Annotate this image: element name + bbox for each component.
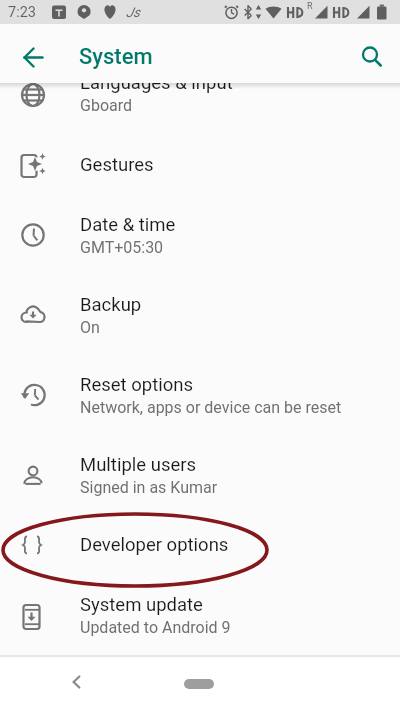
staticText: Date & time <box>80 214 176 236</box>
staticText: 7:23 <box>8 4 36 21</box>
staticText: GMT+05:30 <box>80 238 164 257</box>
button[interactable]: System update <box>0 575 400 655</box>
button[interactable]: Date & time <box>0 195 400 275</box>
staticText: Reset options <box>80 374 194 396</box>
staticText: System <box>79 44 153 70</box>
staticText: Updated to Android 9 <box>80 618 231 637</box>
button[interactable]: Reset options <box>0 355 400 435</box>
staticText: Signed in as Kumar <box>80 478 218 497</box>
button[interactable]: Gestures <box>0 135 400 195</box>
button[interactable]: Developer options <box>0 515 400 575</box>
staticText: R <box>307 1 313 12</box>
button[interactable] <box>184 679 214 689</box>
staticText: Developer options <box>80 534 229 556</box>
staticText: Network, apps or device can be reset <box>80 398 342 417</box>
staticText: Gboard <box>80 96 133 115</box>
button[interactable]: Backup <box>0 275 400 355</box>
staticText: On <box>80 318 100 337</box>
staticText: Gestures <box>80 154 154 176</box>
staticText: Js <box>126 4 140 20</box>
button[interactable]: Languages & input <box>0 55 400 135</box>
staticText: Multiple users <box>80 454 197 476</box>
button[interactable] <box>11 35 55 79</box>
staticText: System update <box>80 594 203 616</box>
button[interactable]: Multiple users <box>0 435 400 515</box>
staticText: Languages & input <box>80 72 233 94</box>
button[interactable] <box>61 667 91 697</box>
button[interactable] <box>350 35 394 79</box>
staticText: Backup <box>80 294 142 316</box>
